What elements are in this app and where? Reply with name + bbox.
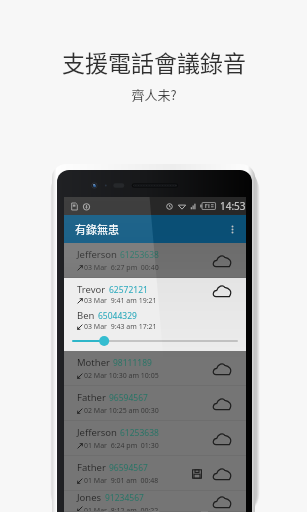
staticText: 01 Mar 9:01 am 00:48 (84, 476, 159, 486)
staticText: 61253638 (120, 427, 159, 439)
button[interactable]: Save recording (190, 467, 204, 481)
button[interactable]: Jefferson (64, 243, 246, 278)
staticText: 有錄無患 (75, 221, 119, 237)
staticText: 03 Mar 6:27 pm 00:40 (84, 263, 159, 273)
staticText: 支援電話會議錄音 (62, 45, 246, 78)
staticText: 96594567 (109, 392, 148, 404)
staticText: 14:53 (220, 199, 246, 213)
staticText: 62572121 (109, 284, 148, 296)
button[interactable]: Mother (64, 351, 246, 386)
staticText: Jones (77, 491, 102, 504)
staticText: 96594567 (109, 462, 148, 474)
staticText: 98111189 (113, 357, 152, 369)
button[interactable]: Upload to cloud (212, 283, 233, 299)
staticText: Mother (77, 356, 110, 369)
button[interactable]: Father (64, 386, 246, 421)
staticText: Ben (77, 309, 95, 322)
staticText: 02 Mar 10:25 am 00:30 (84, 406, 159, 416)
staticText: 02 Mar 10:30 am 10:05 (84, 371, 159, 381)
staticText: 03 Mar 9:41 am 19:21 (84, 296, 157, 306)
button[interactable]: Upload to cloud (212, 253, 233, 269)
button[interactable]: Jones (64, 491, 246, 512)
staticText: 01 Mar 6:24 pm 01:30 (84, 441, 159, 451)
staticText: Jefferson (77, 248, 117, 261)
button[interactable]: Upload to cloud (212, 396, 233, 412)
staticText: Trevor (77, 283, 106, 296)
staticText: 65044329 (98, 310, 137, 322)
staticText: 齊人未? (131, 85, 177, 104)
button[interactable]: Jefferson (64, 421, 246, 456)
staticText: Father (77, 391, 106, 404)
button[interactable]: Upload to cloud (212, 466, 233, 482)
staticText: 01 Mar 8:12 am 00:22 (84, 506, 159, 512)
staticText: 91234567 (105, 492, 144, 504)
staticText: Father (77, 461, 106, 474)
button[interactable]: Upload to cloud (212, 431, 233, 447)
button[interactable]: Trevor (64, 278, 246, 351)
button[interactable]: Playback position (73, 333, 237, 348)
button[interactable]: Father (64, 456, 246, 491)
button[interactable]: 有錄無患 (64, 215, 246, 243)
staticText: 61253638 (120, 249, 159, 261)
staticText: 03 Mar 9:43 am 17:21 (84, 322, 157, 332)
button[interactable]: Upload to cloud (212, 361, 233, 377)
button[interactable]: More options (223, 220, 241, 238)
staticText: Jefferson (77, 426, 117, 439)
button[interactable]: Upload to cloud (212, 494, 233, 510)
